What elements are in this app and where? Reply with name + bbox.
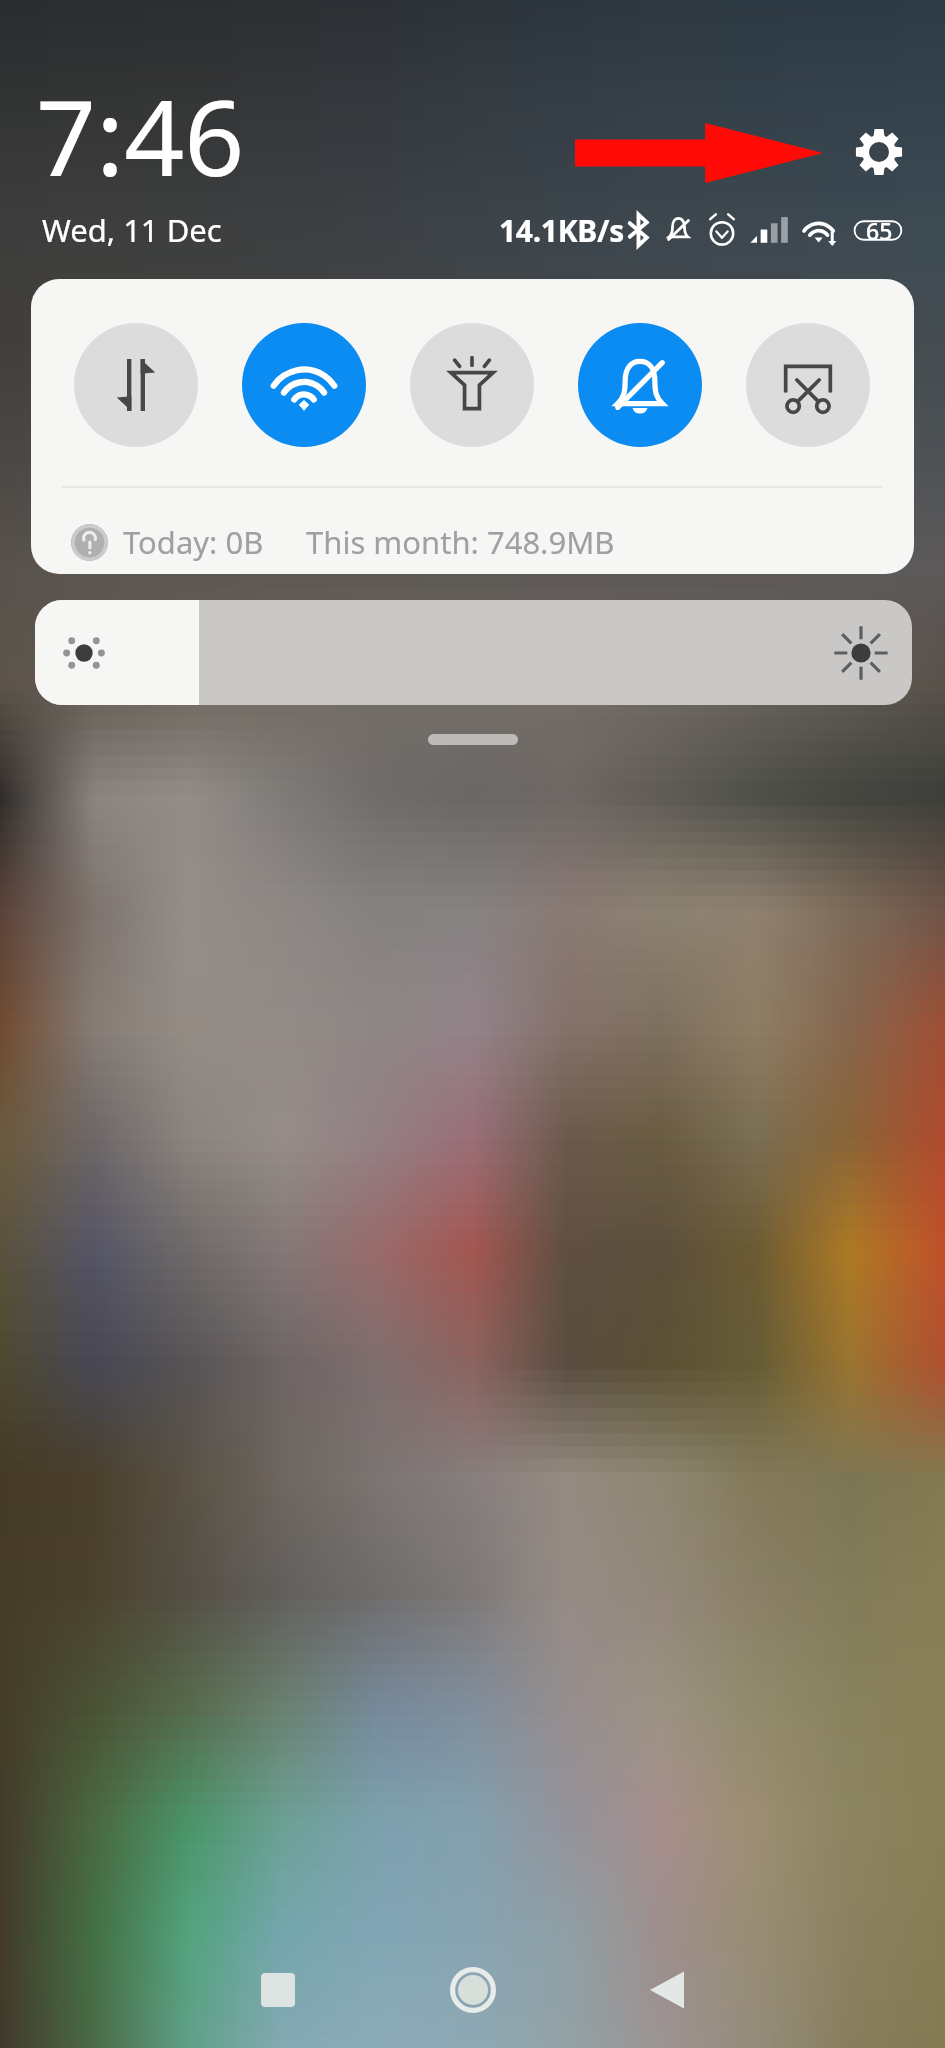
- staticText: This month: 748.9MB: [306, 521, 615, 563]
- staticText: Today: 0B: [123, 521, 264, 563]
- button[interactable]: Back: [613, 1935, 723, 2045]
- staticText: Wed, 11 Dec: [42, 209, 222, 251]
- button[interactable]: Wi-Fi: [242, 323, 366, 447]
- staticText: 65: [866, 215, 893, 246]
- button[interactable]: Recents: [223, 1935, 333, 2045]
- button[interactable]: Screenshot: [746, 323, 870, 447]
- button[interactable]: Silent mode: [578, 323, 702, 447]
- button[interactable]: Settings: [854, 127, 904, 177]
- button[interactable]: Flashlight: [410, 323, 534, 447]
- staticText: 7:46: [36, 64, 245, 207]
- staticText: 14.1KB/s: [499, 210, 624, 251]
- button[interactable]: Brightness: [35, 600, 912, 705]
- button[interactable]: Mobile data: [74, 323, 198, 447]
- button[interactable]: Home: [418, 1935, 528, 2045]
